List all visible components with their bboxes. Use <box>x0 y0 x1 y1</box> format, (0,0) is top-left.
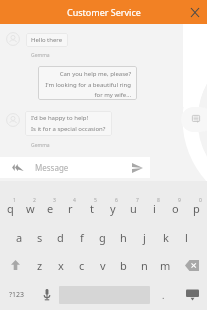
button[interactable]: Can you help me, please? I'm looking for… <box>38 66 137 100</box>
staticText: j <box>143 230 146 245</box>
button[interactable]: v <box>92 251 113 279</box>
staticText: e <box>47 201 54 216</box>
button[interactable]: I'd be happy to help! Is it for a specia… <box>25 111 112 136</box>
staticText: o <box>172 201 179 216</box>
staticText: 6 <box>115 197 118 204</box>
staticText: i <box>153 201 156 216</box>
button[interactable]: Voice input <box>34 280 59 310</box>
button[interactable]: a <box>9 223 29 251</box>
button[interactable]: n <box>134 251 155 279</box>
button[interactable]: 3 <box>40 193 60 221</box>
staticText: z <box>37 258 43 273</box>
button[interactable]: j <box>134 223 155 251</box>
staticText: 4 <box>73 197 76 204</box>
button[interactable]: 6 <box>102 193 123 221</box>
staticText: f <box>80 230 84 245</box>
button[interactable]: m <box>155 251 176 279</box>
staticText: m <box>160 258 171 273</box>
staticText: Hello there <box>31 36 63 44</box>
button[interactable]: Messages <box>181 107 207 132</box>
button[interactable]: 2 <box>20 193 40 221</box>
staticText: I'd be happy to help! Is it for a specia… <box>31 114 106 132</box>
staticText: ?123 <box>9 290 25 300</box>
button[interactable]: . <box>150 280 177 310</box>
staticText: t <box>90 201 94 216</box>
button[interactable]: 8 <box>144 193 165 221</box>
button[interactable]: 9 <box>165 193 186 221</box>
button[interactable]: d <box>50 223 71 251</box>
button[interactable]: Hide keyboard <box>177 280 207 310</box>
staticText: q <box>7 201 14 216</box>
button[interactable]: 7 <box>123 193 144 221</box>
staticText: u <box>130 201 137 216</box>
staticText: 3 <box>53 197 56 204</box>
staticText: k <box>163 230 169 245</box>
staticText: Can you help me, please? I'm looking for… <box>44 70 131 98</box>
button[interactable]: k <box>155 223 176 251</box>
button[interactable]: 0 <box>186 193 207 221</box>
button[interactable]: Send <box>124 157 150 178</box>
staticText: y <box>110 201 116 216</box>
button[interactable]: 4 <box>60 193 81 221</box>
button[interactable]: c <box>71 251 92 279</box>
staticText: Gemma <box>31 142 50 149</box>
button[interactable]: x <box>50 251 71 279</box>
button[interactable]: Reply all <box>0 157 35 178</box>
staticText: a <box>16 230 23 245</box>
button[interactable]: l <box>176 223 197 251</box>
button[interactable]: 5 <box>81 193 102 221</box>
button[interactable]: Hello there <box>26 33 68 47</box>
staticText: p <box>193 201 200 216</box>
button[interactable]: Shift <box>0 251 30 279</box>
button[interactable]: 1 <box>0 193 20 221</box>
staticText: b <box>120 258 127 273</box>
button[interactable]: z <box>30 251 50 279</box>
staticText: 5 <box>94 197 97 204</box>
staticText: 2 <box>33 197 36 204</box>
staticText: 9 <box>178 197 181 204</box>
staticText: 7 <box>136 197 139 204</box>
button[interactable]: h <box>113 223 134 251</box>
staticText: c <box>79 258 85 273</box>
staticText: v <box>100 258 106 273</box>
staticText: Customer Service <box>67 6 141 18</box>
button[interactable]: b <box>113 251 134 279</box>
staticText: 0 <box>199 197 202 204</box>
button[interactable]: g <box>92 223 113 251</box>
button[interactable]: f <box>71 223 92 251</box>
staticText: Gemma <box>31 52 50 59</box>
staticText: 8 <box>157 197 160 204</box>
staticText: h <box>120 230 127 245</box>
staticText: g <box>99 230 106 245</box>
staticText: d <box>57 230 64 245</box>
staticText: Message <box>35 162 69 173</box>
staticText: r <box>68 201 73 216</box>
button[interactable]: Backspace <box>176 251 207 279</box>
staticText: w <box>26 201 35 216</box>
staticText: . <box>162 289 165 301</box>
staticText: 1 <box>13 197 16 204</box>
staticText: l <box>185 230 188 245</box>
button[interactable]: s <box>29 223 50 251</box>
staticText: x <box>58 258 64 273</box>
staticText: s <box>37 230 43 245</box>
staticText: n <box>141 258 148 273</box>
button[interactable]: ?123 <box>0 280 34 310</box>
button[interactable]: Close <box>186 3 204 21</box>
